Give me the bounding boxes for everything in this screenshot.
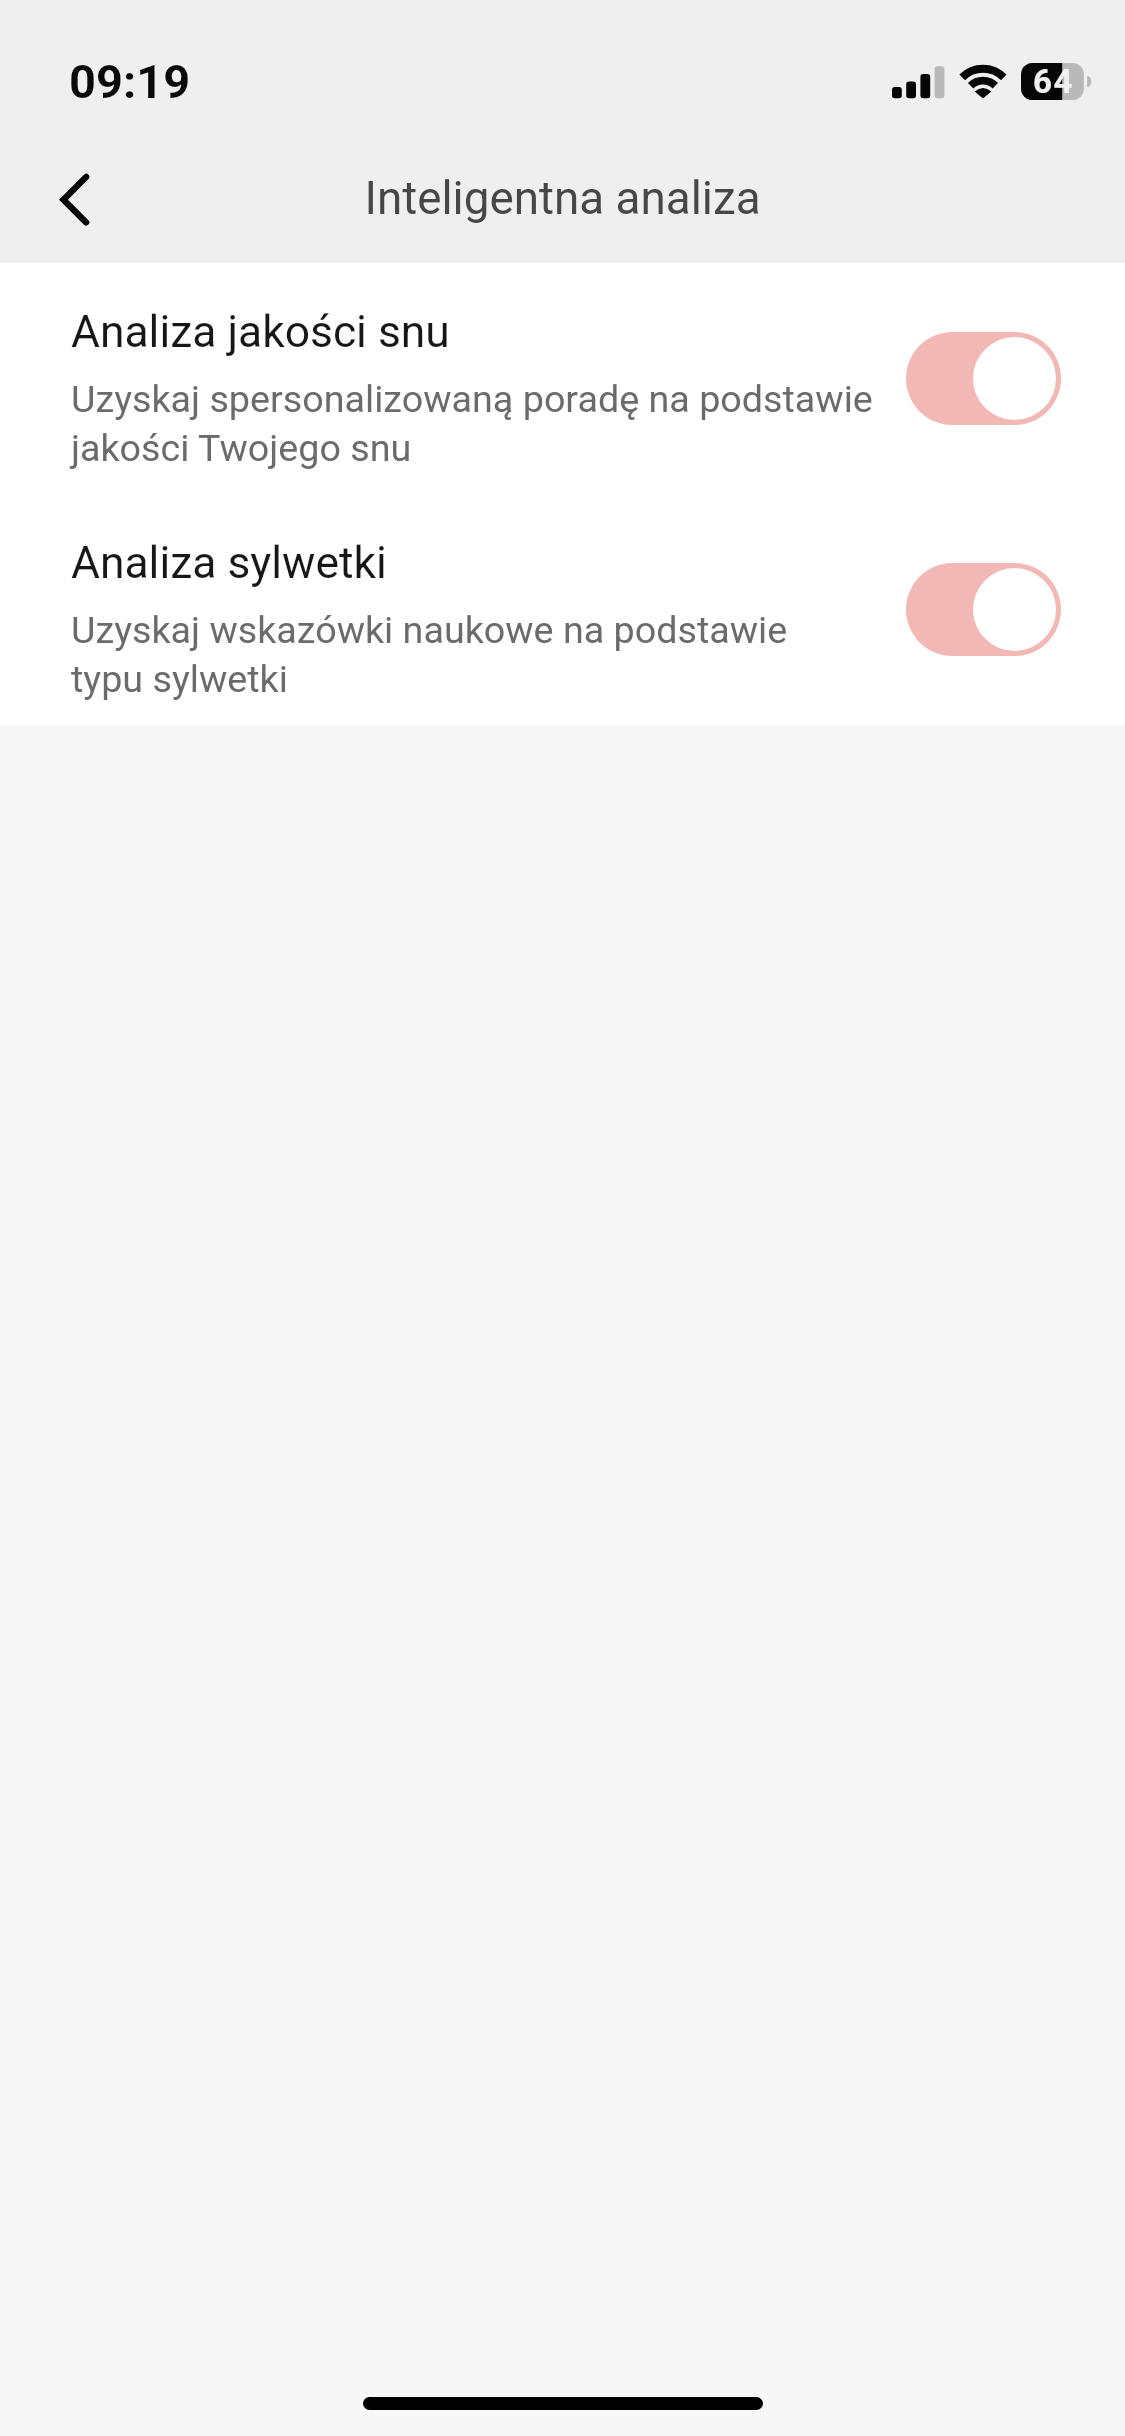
other: Battery 64 percent	[1021, 63, 1093, 101]
button[interactable]: Analiza jakości snu	[0, 263, 1125, 493]
other: Cellular signal	[892, 64, 945, 100]
staticText: Inteligentna analiza	[364, 172, 761, 226]
other: Wi-Fi	[959, 63, 1007, 99]
button[interactable]: Analiza sylwetki	[0, 494, 1125, 724]
staticText: 09:19	[69, 54, 191, 109]
staticText: 64	[1033, 62, 1075, 101]
button[interactable]: Analiza jakości snu, on	[906, 332, 1061, 425]
button[interactable]: Analiza sylwetki, on	[906, 563, 1061, 656]
staticText: Uzyskaj wskazówki naukowe na podstawie t…	[71, 608, 901, 701]
staticText: Analiza sylwetki	[71, 537, 387, 589]
staticText: Uzyskaj spersonalizowaną poradę na podst…	[71, 377, 901, 470]
button[interactable]: Back	[19, 147, 123, 251]
staticText: Analiza jakości snu	[71, 306, 450, 358]
